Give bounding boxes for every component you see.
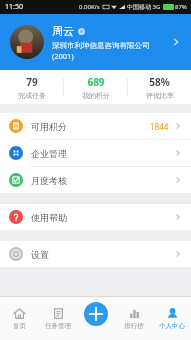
staticText: 企业管理 <box>31 148 174 159</box>
staticText: 月度考核 <box>31 175 174 186</box>
staticText: 个人中心 <box>159 322 185 330</box>
staticText: 排行榜 <box>124 322 144 330</box>
button[interactable]: 任务管理 <box>39 297 77 340</box>
button[interactable]: 79 <box>0 70 63 104</box>
staticText: 任务管理 <box>45 322 71 330</box>
staticText: 设置 <box>31 249 174 260</box>
button[interactable]: 可用积分 <box>0 113 191 139</box>
button[interactable]: 首页 <box>0 297 39 340</box>
button[interactable]: 689 <box>64 70 127 104</box>
button[interactable]: 个人中心 <box>153 297 191 340</box>
staticText: 可用积分 <box>31 121 150 132</box>
staticText: 87% <box>175 3 187 11</box>
staticText: 58% <box>149 75 170 89</box>
staticText: 1844 <box>150 121 169 132</box>
staticText: 中国移动 3G <box>127 3 161 11</box>
staticText: 我的积分 <box>82 91 110 100</box>
staticText: 完成任务 <box>18 91 46 100</box>
staticText: 0.00K/s <box>79 3 100 11</box>
staticText: 79 <box>26 75 38 89</box>
button[interactable]: 周云 <box>0 14 191 70</box>
button[interactable]: 排行榜 <box>115 297 153 340</box>
button[interactable]: 月度考核 <box>0 167 191 193</box>
staticText: 评优比率 <box>146 91 174 100</box>
button[interactable]: 企业管理 <box>0 140 191 166</box>
staticText: 689 <box>87 75 105 89</box>
staticText: 首页 <box>13 322 26 330</box>
button[interactable]: Add <box>84 302 108 326</box>
staticText: 使用帮助 <box>31 212 174 223</box>
staticText: 周云 <box>52 24 74 38</box>
button[interactable]: 58% <box>128 70 191 104</box>
staticText: 深圳市利坤信息咨询有限公司(2001) <box>52 41 171 61</box>
staticText: 11:50 <box>5 2 23 12</box>
button[interactable]: 使用帮助 <box>0 204 191 230</box>
button[interactable]: 设置 <box>0 241 191 267</box>
